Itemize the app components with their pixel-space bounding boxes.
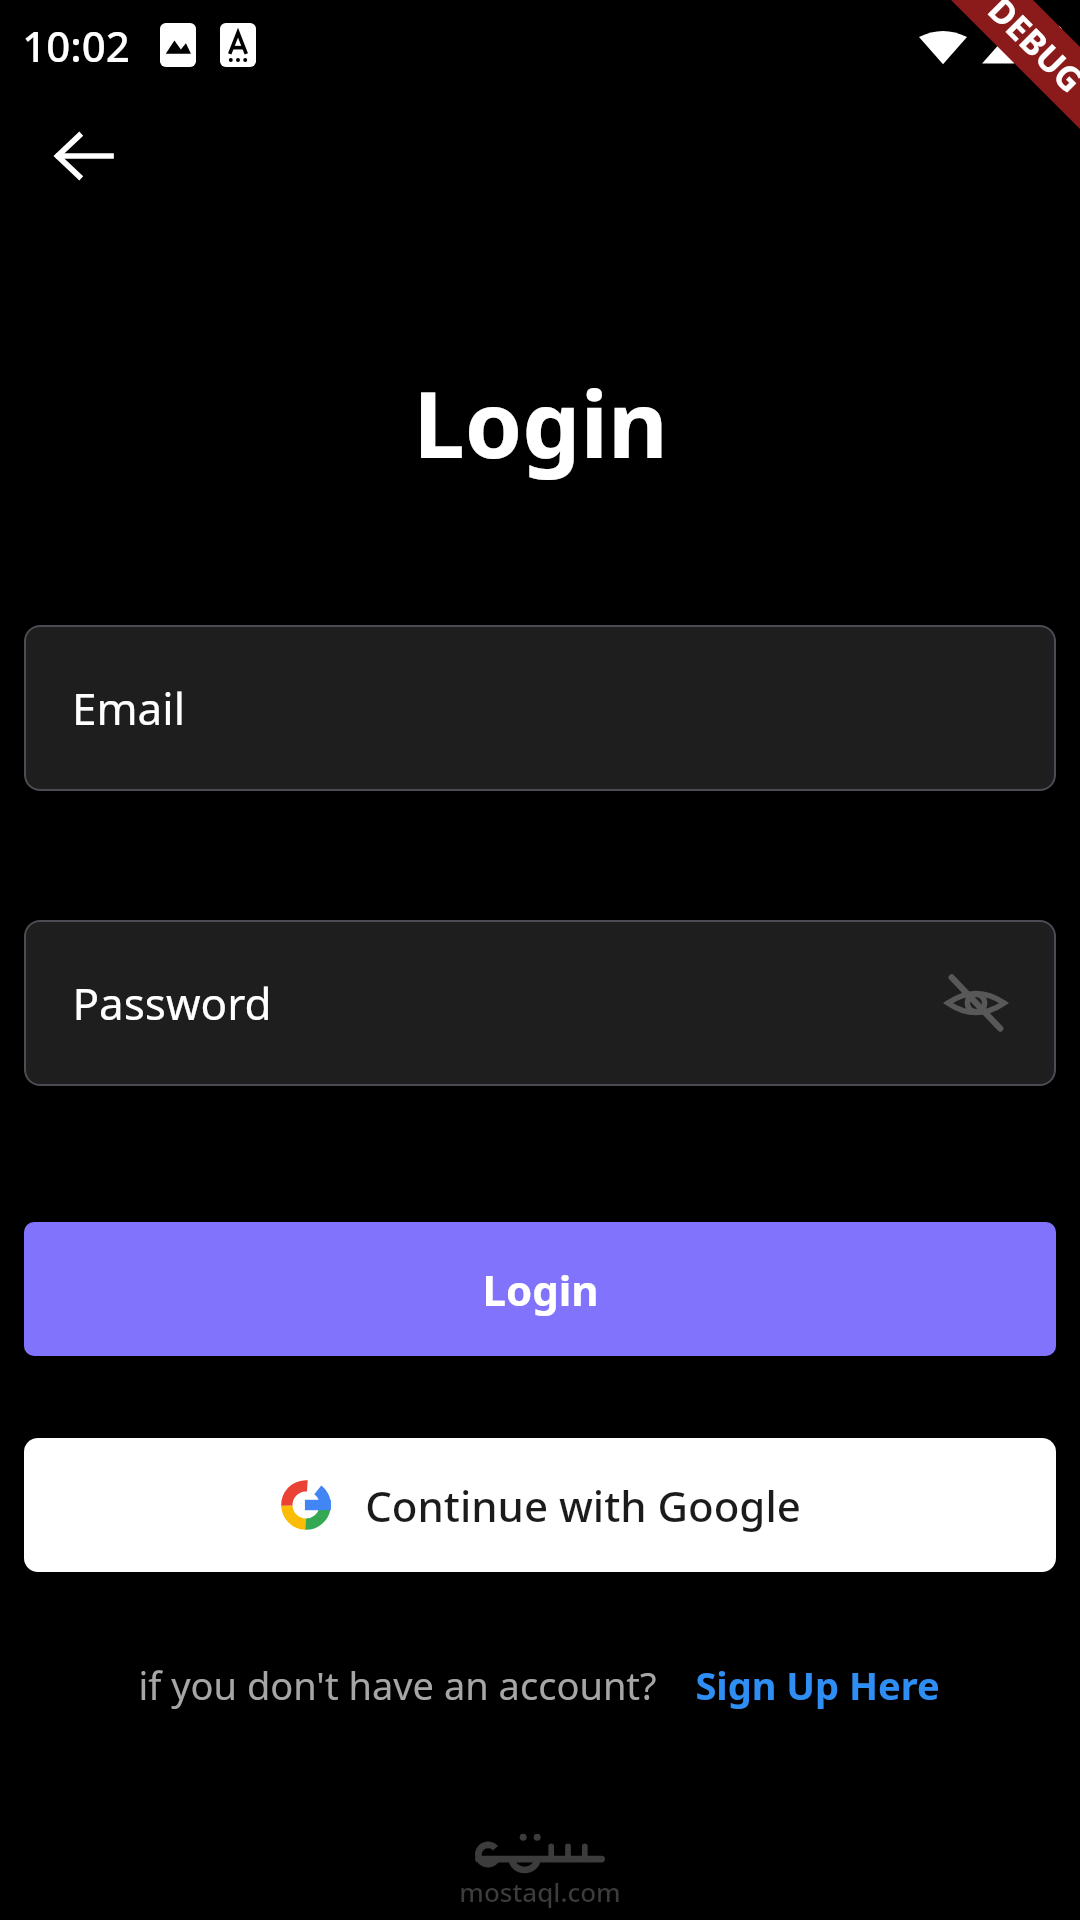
staticText: Login bbox=[413, 360, 668, 485]
staticText: Login bbox=[482, 1261, 599, 1318]
button[interactable]: Back bbox=[28, 110, 140, 202]
staticText: Sign Up Here bbox=[695, 1659, 940, 1711]
staticText: Continue with Google bbox=[365, 1477, 801, 1534]
staticText: Email bbox=[72, 678, 185, 738]
staticText: DEBUG bbox=[979, 0, 1080, 102]
button[interactable]: Continue with Google bbox=[24, 1438, 1056, 1572]
button[interactable]: Toggle password visibility bbox=[940, 967, 1012, 1039]
staticText: Password bbox=[72, 973, 272, 1033]
button[interactable]: Login bbox=[24, 1222, 1056, 1356]
staticText: mostaql.com bbox=[459, 1874, 621, 1909]
button[interactable]: Email bbox=[24, 625, 1056, 791]
staticText: if you don't have an account? bbox=[138, 1659, 657, 1711]
button[interactable]: Sign Up Here bbox=[693, 1655, 942, 1715]
button[interactable]: Password bbox=[24, 920, 1056, 1086]
staticText: 10:02 bbox=[22, 17, 130, 74]
